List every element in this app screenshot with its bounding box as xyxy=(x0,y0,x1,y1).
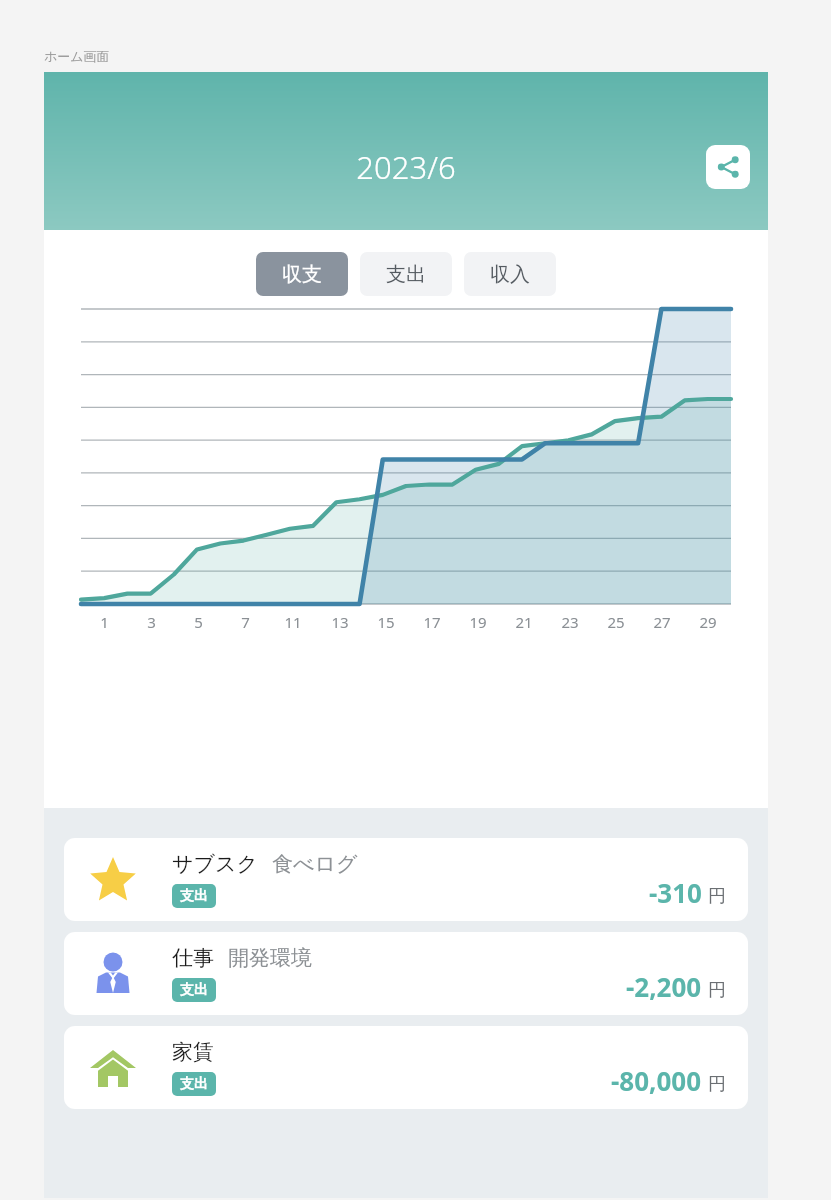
button[interactable]: 収支 xyxy=(256,252,348,296)
staticText: 開発環境 xyxy=(228,945,312,971)
staticText: 15 xyxy=(377,612,395,632)
staticText: 支出 xyxy=(386,262,426,287)
staticText: 円 xyxy=(708,979,726,1002)
staticText: 支出 xyxy=(180,887,208,905)
staticText: 13 xyxy=(331,612,349,632)
staticText: 2023/6 xyxy=(356,146,456,188)
staticText: 23 xyxy=(561,612,579,632)
staticText: 収支 xyxy=(282,262,322,287)
staticText: 5 xyxy=(194,612,203,632)
button[interactable]: 仕事 xyxy=(64,932,748,1015)
staticText: 25 xyxy=(607,612,625,632)
staticText: 円 xyxy=(708,885,726,908)
button[interactable]: サブスク xyxy=(64,838,748,921)
staticText: 17 xyxy=(423,612,441,632)
staticText: 21 xyxy=(515,612,533,632)
button[interactable]: 支出 xyxy=(360,252,452,296)
staticText: サブスク xyxy=(172,851,258,877)
staticText: 29 xyxy=(699,612,717,632)
button[interactable]: 収入 xyxy=(464,252,556,296)
button[interactable]: 家賃 xyxy=(64,1026,748,1109)
staticText: 支出 xyxy=(180,981,208,999)
staticText: -80,000 xyxy=(611,1063,702,1098)
staticText: 収入 xyxy=(490,262,530,287)
staticText: 支出 xyxy=(180,1075,208,1093)
staticText: 円 xyxy=(708,1073,726,1096)
staticText: 7 xyxy=(241,612,250,632)
staticText: 1 xyxy=(100,612,109,632)
staticText: 食べログ xyxy=(272,851,358,877)
staticText: 仕事 xyxy=(172,945,214,971)
staticText: 家賃 xyxy=(172,1039,214,1065)
staticText: 11 xyxy=(284,612,302,632)
staticText: -2,200 xyxy=(626,969,702,1004)
staticText: ホーム画面 xyxy=(44,48,110,64)
staticText: 27 xyxy=(653,612,671,632)
button[interactable]: Share xyxy=(706,145,750,189)
staticText: 19 xyxy=(469,612,487,632)
staticText: 3 xyxy=(147,612,156,632)
staticText: -310 xyxy=(649,875,702,910)
